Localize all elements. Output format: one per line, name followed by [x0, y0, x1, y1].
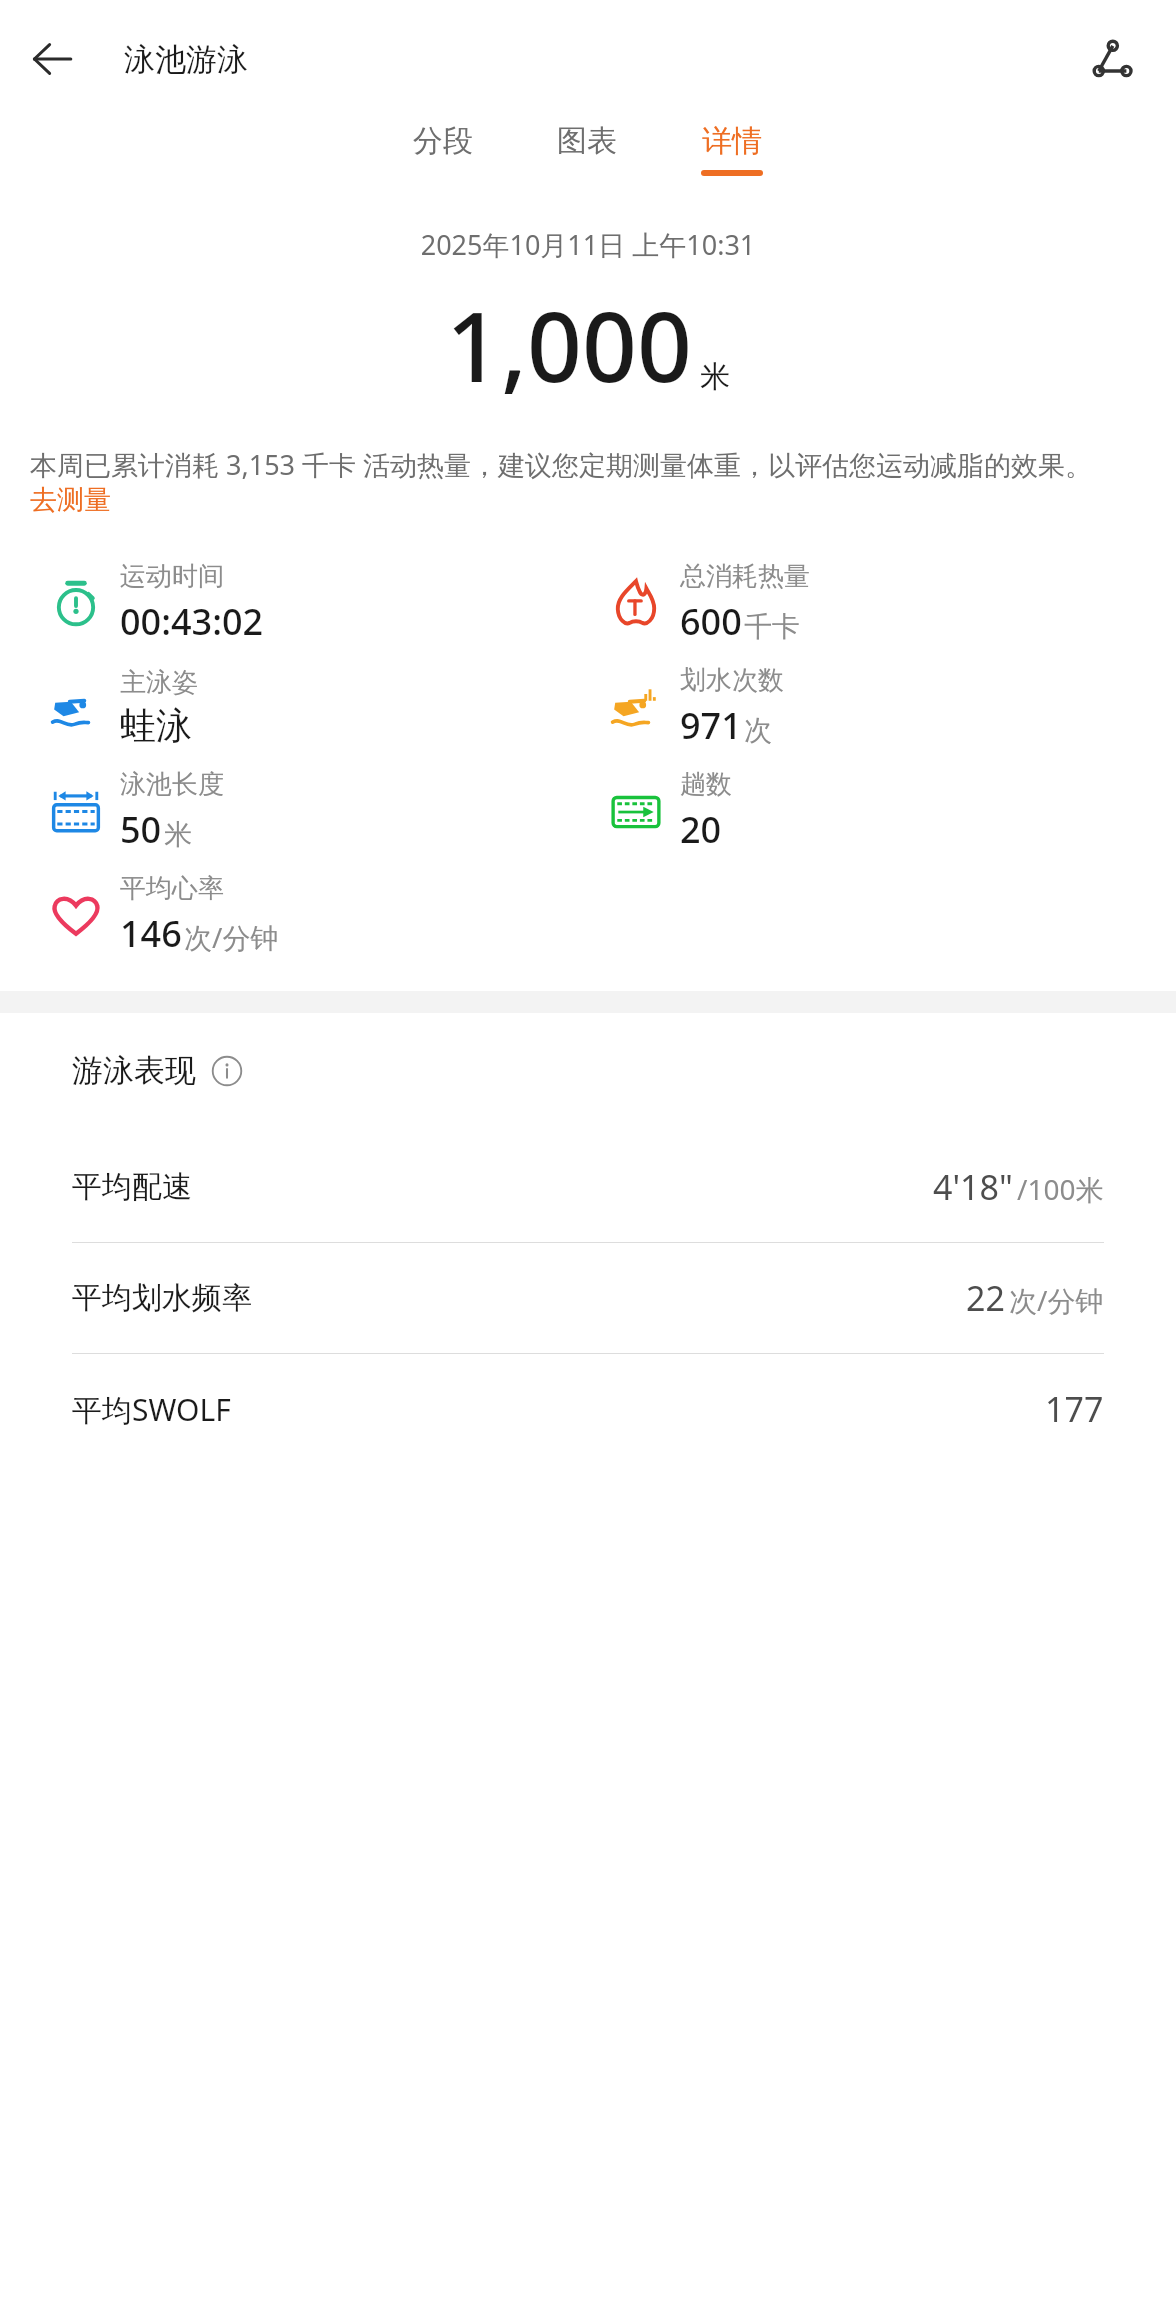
button[interactable]: 趟数 — [610, 759, 732, 863]
staticText: 米 — [700, 358, 730, 396]
staticText: 平均配速 — [72, 1168, 192, 1206]
staticText: 游泳表现 — [72, 1051, 196, 1090]
staticText: 600 — [680, 597, 742, 646]
staticText: 平均划水频率 — [72, 1279, 252, 1317]
button[interactable]: 主泳姿 — [50, 655, 198, 759]
staticText: 4'18" — [933, 1164, 1013, 1210]
button[interactable]: 划水次数 — [610, 655, 784, 759]
button[interactable]: 平均划水频率 — [0, 1243, 1176, 1353]
button[interactable]: Share — [1074, 21, 1150, 97]
button[interactable]: 分段 — [403, 118, 483, 174]
staticText: 20 — [680, 805, 722, 854]
button[interactable]: 去测量 — [30, 483, 111, 517]
staticText: 2025年10月11日 上午10:31 — [0, 226, 1176, 263]
staticText: 177 — [1045, 1386, 1104, 1432]
button[interactable]: 平均心率 — [50, 863, 279, 967]
staticText: 详情 — [702, 122, 762, 160]
staticText: 00:43:02 — [120, 597, 264, 646]
staticText: 去测量 — [30, 483, 111, 517]
staticText: 千卡 — [744, 609, 800, 644]
staticText: 米 — [164, 817, 192, 852]
staticText: 分段 — [413, 122, 473, 160]
staticText: 趟数 — [680, 768, 732, 801]
button[interactable]: Info — [210, 1054, 244, 1088]
button[interactable]: Back — [14, 21, 90, 97]
staticText: 蛙泳 — [120, 703, 192, 748]
button[interactable]: 平均SWOLF — [0, 1354, 1176, 1464]
staticText: 146 — [120, 909, 182, 958]
button[interactable]: 详情 — [691, 118, 773, 180]
staticText: 划水次数 — [680, 664, 784, 697]
staticText: 本周已累计消耗 3,153 千卡 活动热量，建议您定期测量体重，以评估您运动减脂… — [30, 446, 1093, 483]
staticText: 971 — [680, 701, 742, 750]
staticText: 次/分钟 — [1009, 1281, 1104, 1319]
staticText: 50 — [120, 805, 162, 854]
staticText: 次/分钟 — [184, 918, 279, 956]
staticText: 图表 — [557, 122, 617, 160]
button[interactable]: 运动时间 — [50, 551, 264, 655]
staticText: 运动时间 — [120, 560, 224, 593]
staticText: /100米 — [1017, 1170, 1104, 1208]
staticText: 主泳姿 — [120, 666, 198, 699]
button[interactable]: 平均配速 — [0, 1132, 1176, 1242]
staticText: 平均心率 — [120, 872, 224, 905]
staticText: 22 — [966, 1275, 1005, 1321]
button[interactable]: 图表 — [547, 118, 627, 174]
staticText: 次 — [744, 713, 772, 748]
staticText: 1,000 — [446, 279, 692, 410]
staticText: 平均SWOLF — [72, 1389, 231, 1430]
staticText: 总消耗热量 — [680, 560, 810, 593]
button[interactable]: 总消耗热量 — [610, 551, 810, 655]
button[interactable]: 泳池长度 — [50, 759, 224, 863]
staticText: 泳池长度 — [120, 768, 224, 801]
staticText: 泳池游泳 — [124, 40, 248, 79]
